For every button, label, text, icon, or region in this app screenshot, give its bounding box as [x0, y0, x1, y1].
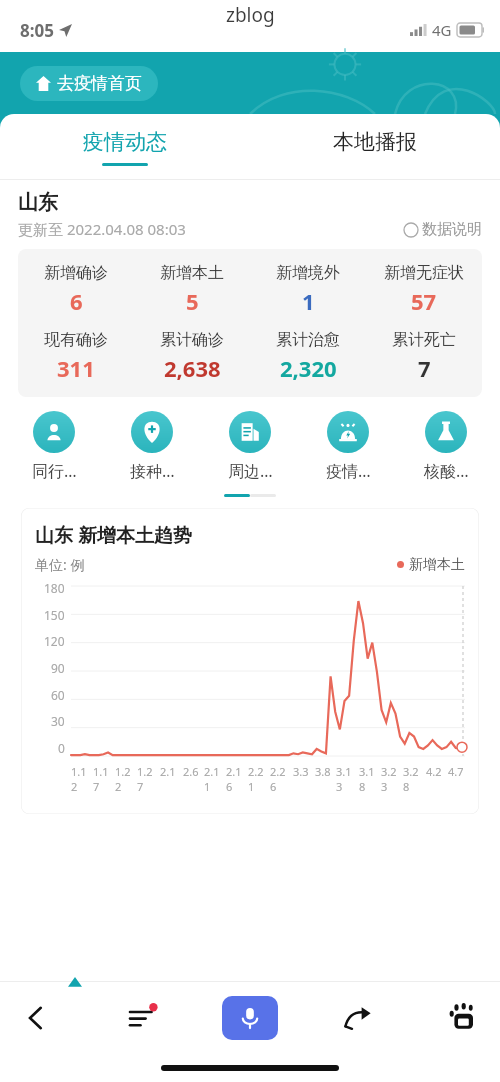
staticText: 180 — [44, 580, 65, 596]
staticText: 累计治愈 — [276, 330, 340, 350]
staticText: 去疫情首页 — [57, 73, 142, 94]
staticText: 单位: 例 — [35, 555, 85, 574]
button[interactable]: 数据说明 — [404, 220, 482, 239]
staticText: 新增本土 — [160, 263, 224, 283]
staticText: 本地播报 — [333, 129, 417, 155]
staticText: 2.6 — [183, 764, 199, 779]
staticText: 1.12 — [71, 764, 89, 794]
staticText: 核酸… — [424, 460, 469, 482]
button[interactable]: 现有确诊 — [18, 330, 134, 383]
staticText: 2,638 — [164, 353, 221, 383]
staticText: 2,320 — [280, 353, 337, 383]
staticText: 3.13 — [336, 764, 354, 794]
staticText: 3.18 — [359, 764, 377, 794]
staticText: 6 — [70, 286, 83, 316]
staticText: 更新至 2022.04.08 08:03 — [18, 219, 186, 239]
staticText: 150 — [44, 607, 65, 623]
staticText: 山东 — [18, 190, 58, 215]
button[interactable]: Voice search — [222, 996, 278, 1040]
button[interactable]: Share — [332, 992, 384, 1044]
staticText: 数据说明 — [422, 220, 482, 239]
staticText: 接种… — [130, 460, 175, 482]
button[interactable]: 去疫情首页 — [20, 66, 158, 101]
staticText: 新增本土 — [409, 556, 465, 574]
staticText: 累计死亡 — [392, 330, 456, 350]
button[interactable]: 本地播报 — [250, 114, 500, 180]
staticText: 2.11 — [204, 764, 222, 794]
button[interactable]: 疫情… — [308, 411, 388, 482]
button[interactable]: 接种… — [112, 411, 192, 482]
button[interactable]: 累计死亡 — [366, 330, 482, 383]
staticText: 4.7 — [448, 764, 464, 779]
staticText: 3.28 — [403, 764, 421, 794]
staticText: 现有确诊 — [44, 330, 108, 350]
staticText: 2.26 — [270, 764, 288, 794]
button[interactable]: 新增本土 — [134, 263, 250, 316]
staticText: 7 — [418, 353, 431, 383]
button[interactable]: 周边… — [210, 411, 290, 482]
staticText: 120 — [44, 633, 65, 649]
staticText: 5 — [186, 286, 199, 316]
staticText: 3.8 — [315, 764, 331, 779]
staticText: 累计确诊 — [160, 330, 224, 350]
button[interactable]: 累计治愈 — [250, 330, 366, 383]
button[interactable]: 新增境外 — [250, 263, 366, 316]
staticText: 新增境外 — [276, 263, 340, 283]
staticText: zblog — [226, 2, 275, 28]
staticText: 8:05 — [20, 19, 54, 42]
staticText: 周边… — [228, 460, 273, 482]
staticText: 57 — [411, 286, 437, 316]
staticText: 0 — [58, 740, 65, 756]
staticText: 2.1 — [160, 764, 176, 779]
staticText: 疫情动态 — [83, 129, 167, 155]
staticText: 2.21 — [248, 764, 266, 794]
button[interactable]: 新增确诊 — [18, 263, 134, 316]
staticText: 60 — [51, 687, 65, 703]
staticText: 1.22 — [115, 764, 133, 794]
staticText: 90 — [51, 660, 65, 676]
staticText: 3.23 — [381, 764, 399, 794]
staticText: 1 — [302, 286, 315, 316]
staticText: 311 — [57, 353, 95, 383]
button[interactable]: Back — [10, 992, 62, 1044]
staticText: 2.16 — [226, 764, 244, 794]
staticText: 1.17 — [93, 764, 111, 794]
staticText: 同行… — [32, 460, 77, 482]
button[interactable]: 疫情动态 — [0, 114, 250, 180]
staticText: 30 — [51, 713, 65, 729]
button[interactable]: 同行… — [14, 411, 94, 482]
staticText: 新增确诊 — [44, 263, 108, 283]
staticText: 3.3 — [293, 764, 309, 779]
staticText: 4G — [432, 20, 452, 40]
button[interactable]: 累计确诊 — [134, 330, 250, 383]
button[interactable]: 新增无症状 — [366, 263, 482, 316]
staticText: 疫情… — [326, 460, 371, 482]
button[interactable]: 核酸… — [406, 411, 486, 482]
staticText: 4.2 — [426, 764, 442, 779]
staticText: 山东 新增本土趋势 — [35, 522, 192, 548]
staticText: 1.27 — [137, 764, 155, 794]
button[interactable]: Baidu — [438, 992, 490, 1044]
staticText: 新增无症状 — [384, 263, 464, 283]
button[interactable]: Menu — [116, 992, 168, 1044]
